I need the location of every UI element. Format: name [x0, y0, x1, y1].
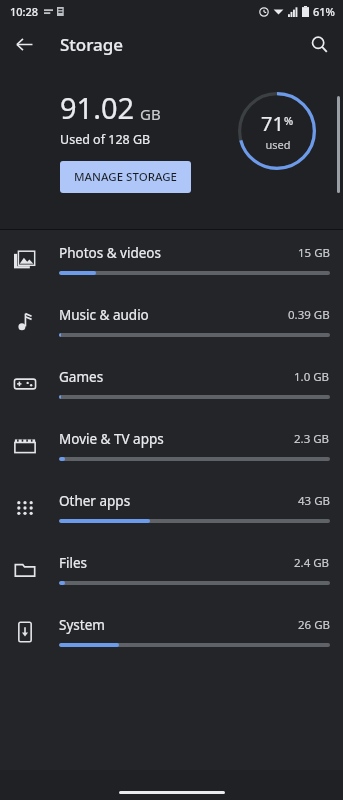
staticText: 91.02: [60, 88, 135, 127]
button[interactable]: Movie & TV apps: [0, 416, 343, 478]
staticText: Files: [59, 554, 88, 572]
staticText: System: [59, 616, 105, 634]
staticText: 26 GB: [298, 617, 330, 633]
staticText: Games: [59, 368, 104, 386]
staticText: Other apps: [59, 492, 131, 510]
button[interactable]: Photos & videos: [0, 230, 343, 292]
button[interactable]: Search: [301, 26, 337, 62]
staticText: 15 GB: [298, 245, 330, 261]
button[interactable]: Games: [0, 354, 343, 416]
staticText: Music & audio: [59, 306, 149, 324]
staticText: Photos & videos: [59, 244, 161, 262]
staticText: %: [284, 113, 294, 128]
button[interactable]: Music & audio: [0, 292, 343, 354]
staticText: 10:28: [10, 4, 39, 19]
staticText: used: [265, 137, 291, 152]
staticText: 2.3 GB: [294, 431, 330, 447]
staticText: Storage: [60, 33, 124, 56]
button[interactable]: Back: [6, 26, 42, 62]
staticText: 61%: [313, 4, 335, 19]
staticText: GB: [140, 104, 161, 124]
staticText: 43 GB: [298, 493, 330, 509]
button[interactable]: MANAGE STORAGE: [60, 161, 191, 193]
button[interactable]: Files: [0, 540, 343, 602]
staticText: MANAGE STORAGE: [74, 169, 177, 185]
staticText: Movie & TV apps: [59, 430, 164, 448]
staticText: 2.4 GB: [294, 555, 330, 571]
button[interactable]: Other apps: [0, 478, 343, 540]
staticText: 1.0 GB: [294, 369, 330, 385]
staticText: 0.39 GB: [288, 307, 330, 323]
button[interactable]: System: [0, 602, 343, 664]
staticText: 71: [261, 110, 284, 137]
staticText: Used of 128 GB: [60, 131, 151, 148]
